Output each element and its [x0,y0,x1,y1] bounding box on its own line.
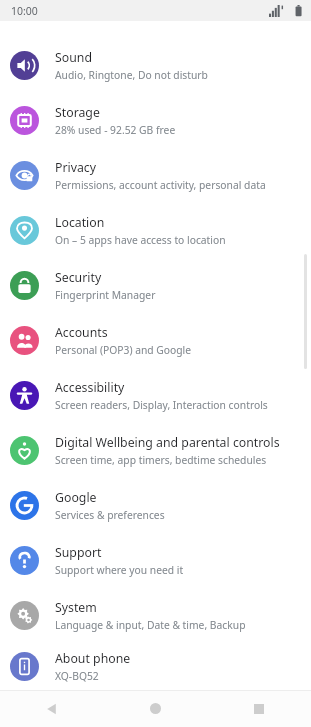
button[interactable]: Sound [0,38,311,93]
staticText: Audio, Ringtone, Do not disturb [55,68,208,82]
button[interactable]: Accounts [0,313,311,368]
button[interactable]: Accessibility [0,368,311,423]
staticText: Support where you need it [55,563,184,577]
button[interactable]: Google [0,478,311,533]
staticText: Security [55,269,102,286]
staticText: XQ-BQ52 [55,669,99,683]
staticText: Screen time, app timers, bedtime schedul… [55,453,267,467]
staticText: Privacy [55,159,97,176]
staticText: About phone [55,650,131,667]
button[interactable]: Security [0,258,311,313]
staticText: System [55,599,97,616]
staticText: Storage [55,104,100,121]
staticText: Accessibility [55,379,125,396]
button[interactable]: Privacy [0,148,311,203]
button[interactable]: Back [0,690,103,727]
button[interactable]: Storage [0,93,311,148]
staticText: On – 5 apps have access to location [55,233,226,247]
staticText: Accounts [55,324,108,341]
staticText: 28% used - 92.52 GB free [55,123,176,137]
button[interactable]: Digital Wellbeing and parental controls [0,423,311,478]
button[interactable]: System [0,588,311,643]
staticText: Fingerprint Manager [55,288,156,302]
staticText: Sound [55,49,92,66]
staticText: Support [55,544,102,561]
staticText: 10:00 [11,4,38,18]
staticText: Personal (POP3) and Google [55,343,192,357]
staticText: Services & preferences [55,508,165,522]
staticText: Location [55,214,105,231]
staticText: Screen readers, Display, Interaction con… [55,398,268,412]
button[interactable]: About phone [0,643,311,690]
button[interactable]: Home [103,690,207,727]
button[interactable]: Support [0,533,311,588]
staticText: Permissions, account activity, personal … [55,178,266,192]
staticText: Google [55,489,97,506]
staticText: Language & input, Date & time, Backup [55,618,246,632]
button[interactable]: Recent apps [207,690,311,727]
button[interactable]: Location [0,203,311,258]
staticText: Digital Wellbeing and parental controls [55,434,280,451]
